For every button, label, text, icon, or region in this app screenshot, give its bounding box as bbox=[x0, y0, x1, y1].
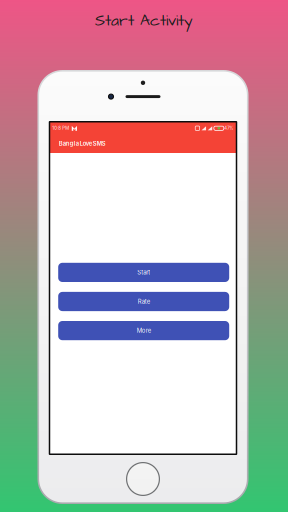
staticText: Start bbox=[137, 269, 150, 276]
staticText: PM bbox=[62, 126, 69, 131]
staticText: 47% bbox=[224, 126, 233, 131]
staticText: Start Activity bbox=[95, 10, 193, 32]
button[interactable]: More bbox=[58, 321, 229, 340]
staticText: 10:8 bbox=[52, 126, 61, 131]
staticText: Bangla Love SMS bbox=[59, 140, 106, 147]
button[interactable]: Start bbox=[58, 263, 229, 282]
staticText: More bbox=[137, 327, 151, 334]
staticText: Rate bbox=[138, 298, 150, 305]
button[interactable]: Rate bbox=[58, 292, 229, 311]
